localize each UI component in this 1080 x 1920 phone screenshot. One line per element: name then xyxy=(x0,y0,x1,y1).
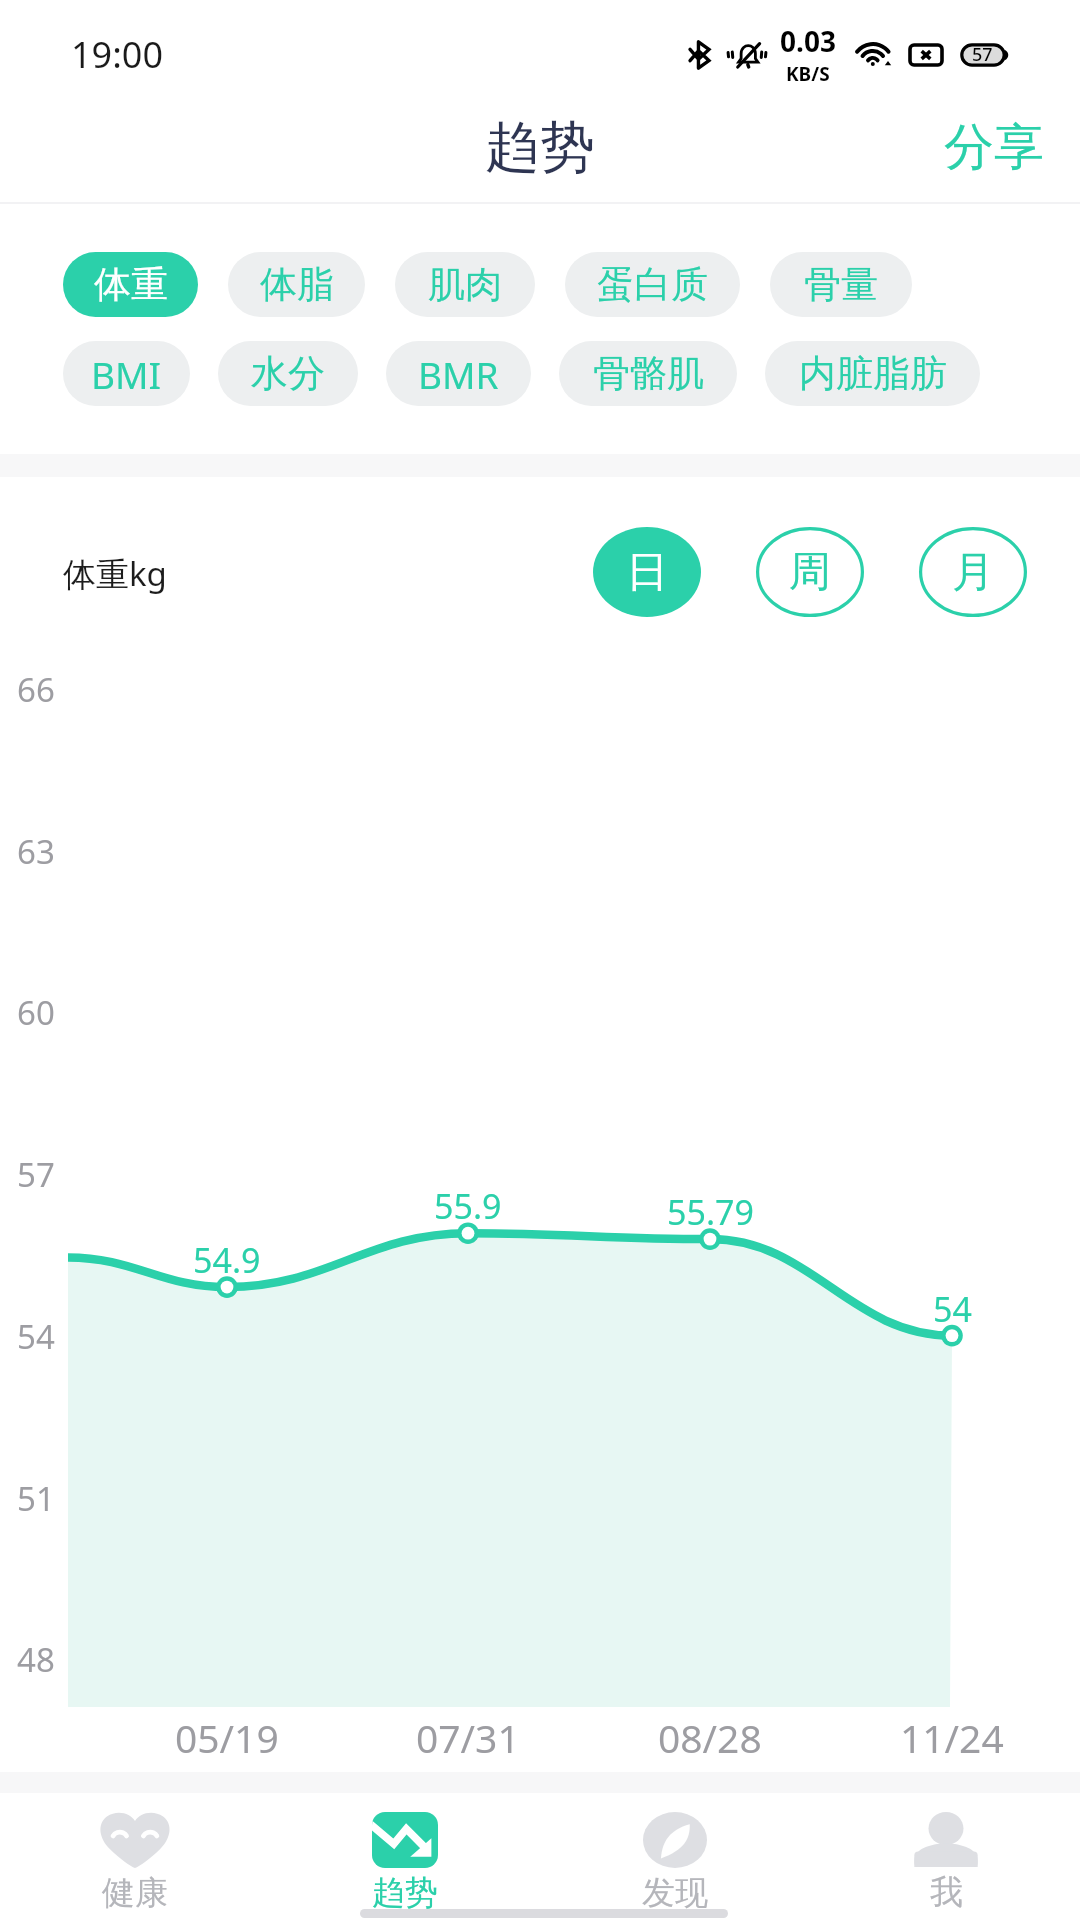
staticText: 骨骼肌 xyxy=(593,350,704,397)
staticText: 健康 xyxy=(102,1872,168,1914)
button[interactable]: 健康 xyxy=(0,1775,270,1920)
button[interactable]: 发现 xyxy=(540,1775,810,1920)
staticText: 水分 xyxy=(251,350,325,397)
staticText: 月 xyxy=(952,546,994,599)
button[interactable]: 周 xyxy=(756,527,864,617)
other: 我 xyxy=(913,1812,979,1867)
staticText: 周 xyxy=(789,546,831,599)
staticText: 07/31 xyxy=(416,1711,520,1763)
staticText: 0.03 xyxy=(780,22,836,60)
staticText: 54 xyxy=(933,1286,972,1332)
staticText: 19:00 xyxy=(71,30,164,79)
staticText: 54 xyxy=(17,1314,55,1359)
button[interactable]: 内脏脂肪 xyxy=(765,341,980,406)
staticText: 55.9 xyxy=(434,1183,502,1229)
button[interactable]: 肌肉 xyxy=(395,252,535,317)
button[interactable]: 月 xyxy=(919,527,1027,617)
staticText: 日 xyxy=(626,546,668,599)
button[interactable]: 骨量 xyxy=(770,252,912,317)
staticText: 体重kg xyxy=(63,551,167,596)
staticText: 发现 xyxy=(642,1872,708,1914)
staticText: 57 xyxy=(972,42,993,67)
staticText: 48 xyxy=(17,1637,55,1682)
button[interactable]: BMI xyxy=(63,341,190,406)
staticText: 63 xyxy=(17,829,55,874)
staticText: 内脏脂肪 xyxy=(799,350,947,397)
button[interactable]: 蛋白质 xyxy=(565,252,740,317)
staticText: 蛋白质 xyxy=(597,261,708,308)
staticText: 05/19 xyxy=(175,1711,279,1763)
staticText: 51 xyxy=(17,1476,55,1521)
button[interactable]: 我 xyxy=(811,1775,1080,1920)
other: 健康 xyxy=(98,1812,172,1868)
staticText: 60 xyxy=(17,990,55,1035)
staticText: 08/28 xyxy=(658,1711,762,1763)
button[interactable]: 骨骼肌 xyxy=(559,341,737,406)
button[interactable]: 趋势 xyxy=(270,1775,540,1920)
staticText: 11/24 xyxy=(900,1711,1004,1763)
staticText: 体脂 xyxy=(260,261,334,308)
button[interactable]: 日 xyxy=(593,527,701,617)
staticText: BMI xyxy=(91,349,162,399)
staticText: 54.9 xyxy=(193,1237,261,1283)
button[interactable]: 水分 xyxy=(218,341,358,406)
button[interactable]: 分享 xyxy=(906,94,1080,201)
staticText: KB/S xyxy=(786,61,830,87)
staticText: 66 xyxy=(17,667,55,712)
staticText: 我 xyxy=(930,1871,963,1913)
staticText: 肌肉 xyxy=(428,261,502,308)
staticText: BMR xyxy=(418,349,499,399)
staticText: 分享 xyxy=(944,116,1044,179)
staticText: 57 xyxy=(17,1152,55,1197)
button[interactable]: 体重 xyxy=(63,252,198,317)
staticText: 骨量 xyxy=(804,261,878,308)
staticText: 趋势 xyxy=(485,113,595,182)
staticText: 趋势 xyxy=(372,1872,438,1914)
staticText: 55.79 xyxy=(667,1189,754,1235)
staticText: 体重 xyxy=(94,261,168,308)
other: 发现 xyxy=(643,1812,707,1868)
button[interactable]: 体脂 xyxy=(228,252,365,317)
button[interactable]: BMR xyxy=(386,341,531,406)
other: 趋势 xyxy=(372,1812,438,1868)
